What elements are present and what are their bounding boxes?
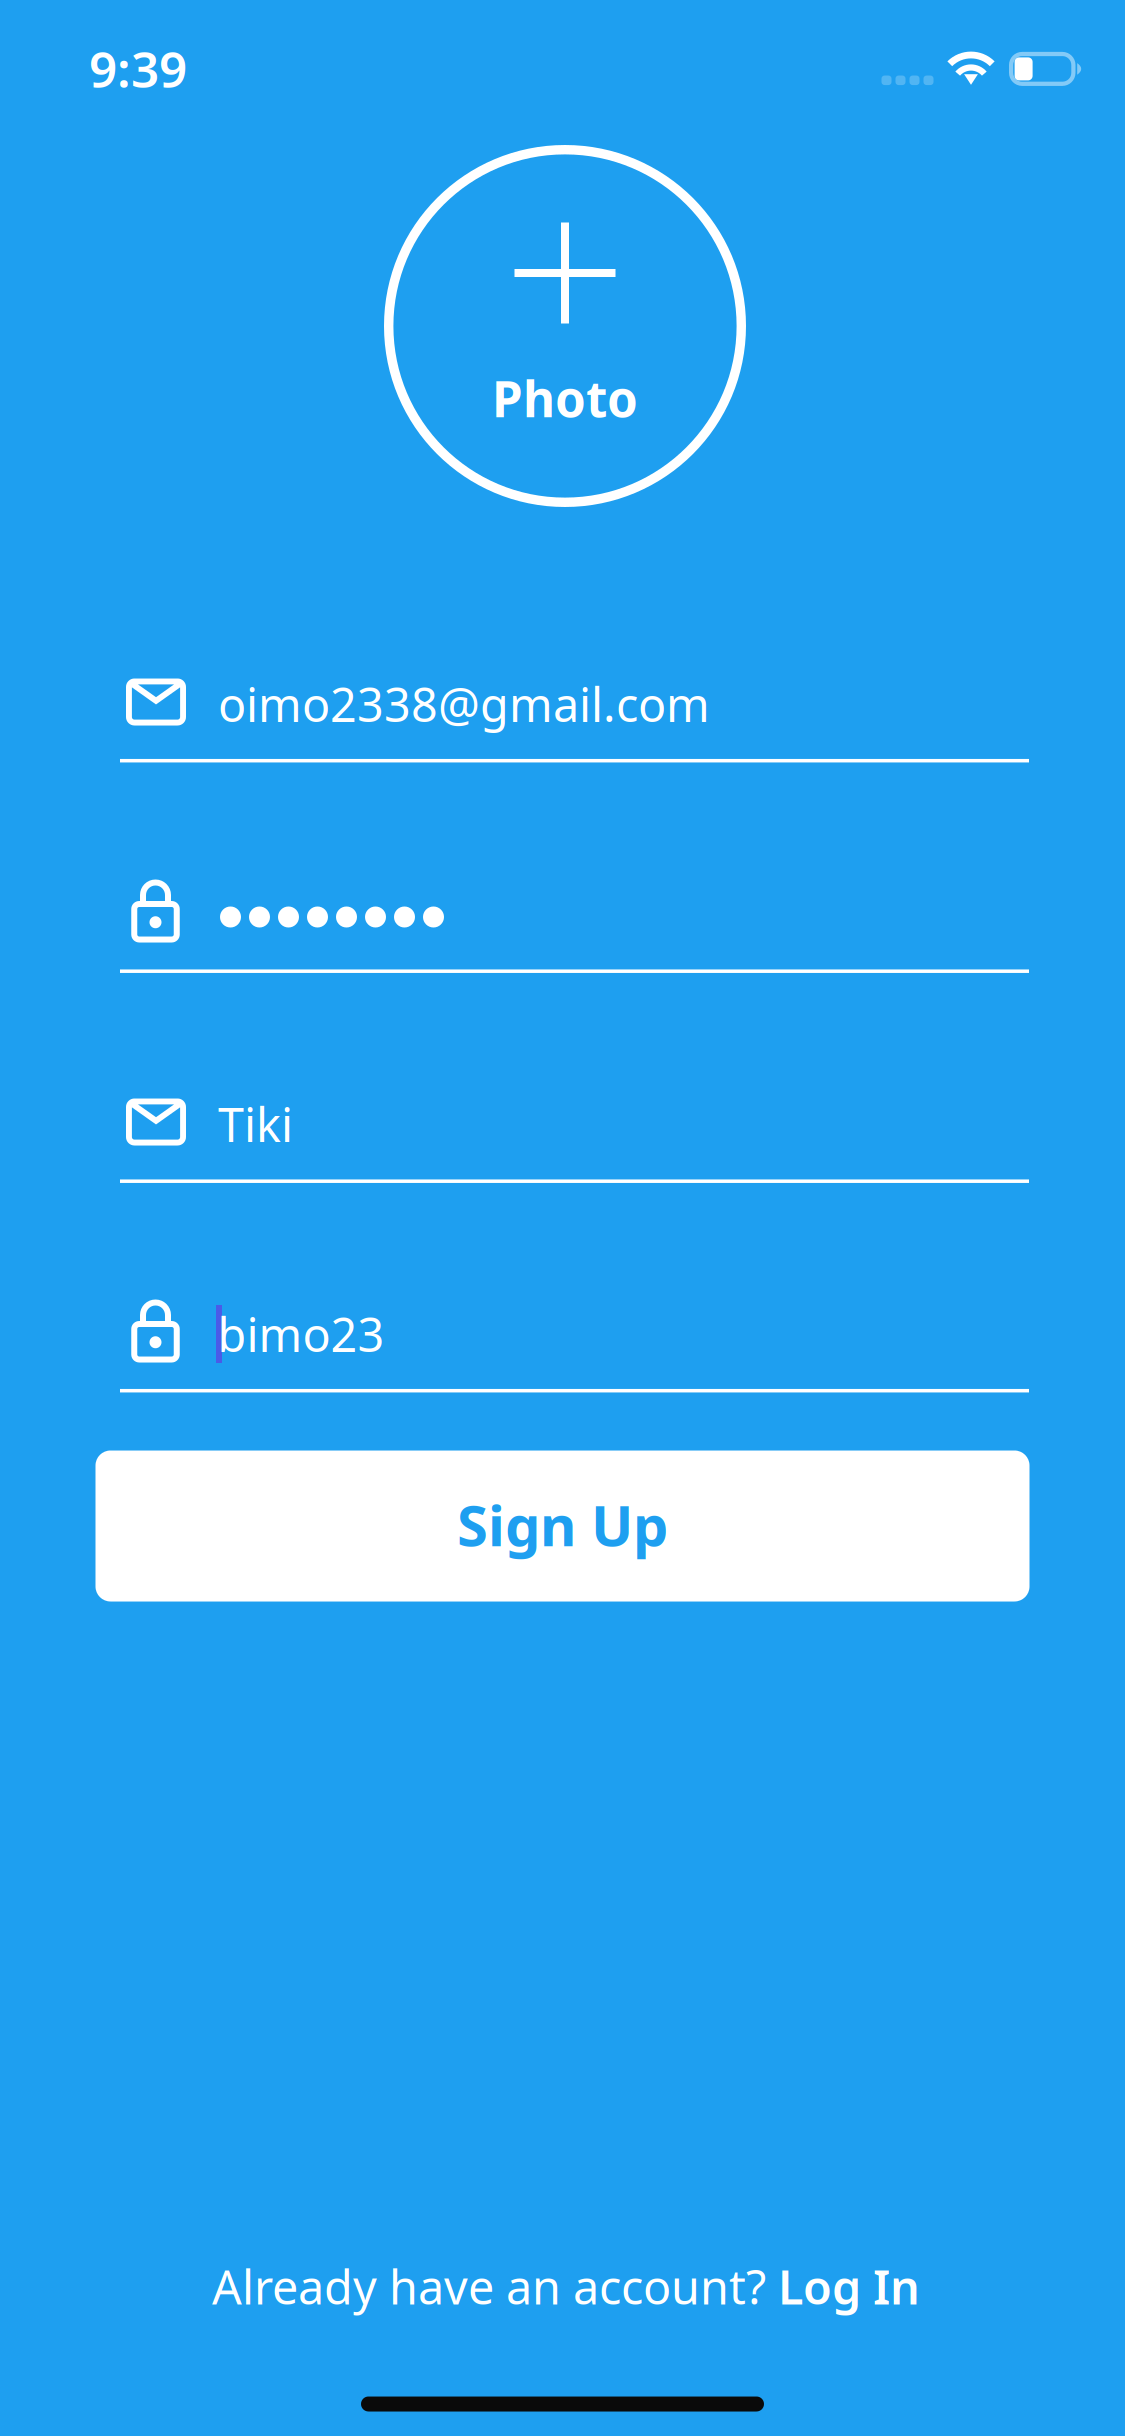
staticText: bimo23: [217, 1303, 384, 1365]
staticText: Log In: [778, 2255, 920, 2317]
staticText: Tiki: [218, 1093, 293, 1155]
button[interactable]: Add profile photo: [384, 145, 746, 507]
button[interactable]: bimo23: [120, 1286, 1029, 1382]
button[interactable]: Password: [120, 866, 1029, 962]
button[interactable]: Sign Up: [95, 1450, 1029, 1601]
staticText: Already have an account?: [212, 2255, 778, 2317]
button[interactable]: Tiki: [120, 1086, 1029, 1182]
button[interactable]: oimo2338@gmail.com: [120, 666, 1029, 762]
staticText: 9:39: [89, 36, 187, 101]
staticText: Photo: [492, 365, 638, 431]
staticText: Sign Up: [457, 1487, 668, 1562]
button[interactable]: Already have an account?: [212, 2255, 920, 2317]
staticText: oimo2338@gmail.com: [218, 673, 710, 735]
